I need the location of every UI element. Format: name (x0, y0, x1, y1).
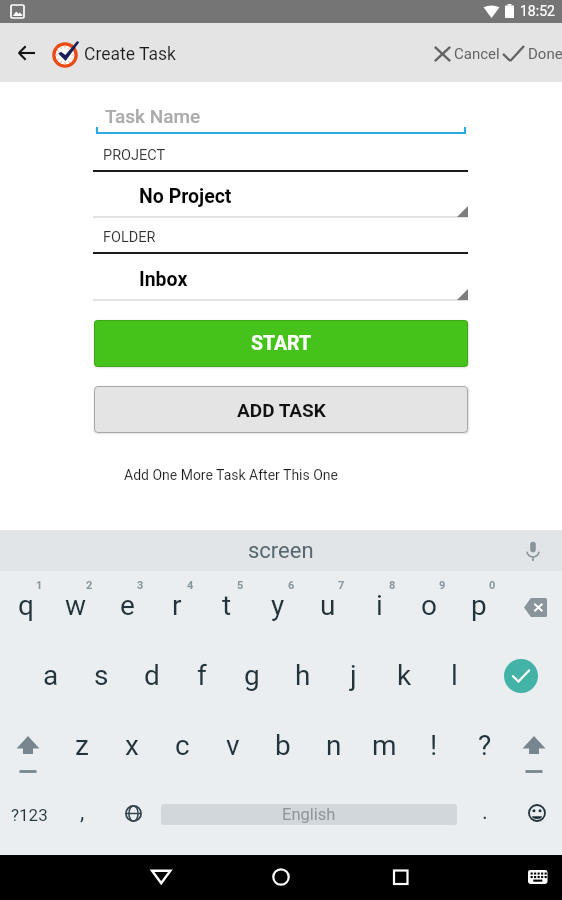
button[interactable]: ?123 (0, 788, 58, 838)
button[interactable]: k (379, 648, 429, 700)
button[interactable]: Switch keyboard (514, 855, 562, 900)
button[interactable]: Home (257, 855, 305, 900)
staticText: 8 (389, 579, 396, 592)
staticText: a (43, 659, 59, 692)
staticText: 4 (187, 579, 194, 592)
button[interactable]: Back (137, 855, 185, 900)
staticText: w (65, 589, 87, 622)
button[interactable]: Shift (3, 720, 53, 782)
button[interactable]: t (202, 578, 252, 630)
button[interactable]: j (328, 648, 378, 700)
button[interactable]: Emoji (512, 788, 562, 838)
staticText: 18:52 (520, 3, 555, 19)
staticText: l (451, 659, 458, 692)
button[interactable]: y (253, 578, 303, 630)
button[interactable]: Change language (108, 788, 158, 838)
staticText: Inbox (139, 268, 188, 291)
staticText: Cancel (454, 45, 500, 63)
staticText: screen (248, 538, 314, 564)
button[interactable]: Enter (496, 651, 546, 701)
button[interactable]: ! (409, 718, 459, 770)
button[interactable]: Backspace (510, 581, 560, 633)
button[interactable]: , (57, 788, 107, 838)
staticText: 7 (338, 579, 345, 592)
staticText: m (372, 729, 397, 762)
staticText: Task Name (105, 105, 201, 127)
staticText: d (144, 659, 160, 692)
staticText: k (397, 659, 412, 692)
button[interactable]: Voice input (518, 536, 548, 566)
button[interactable]: m (359, 718, 409, 770)
staticText: English (282, 805, 336, 824)
button[interactable] (94, 104, 468, 136)
button[interactable] (498, 31, 562, 75)
button[interactable]: r (152, 578, 202, 630)
staticText: y (271, 589, 285, 622)
staticText: START (251, 332, 312, 355)
button[interactable]: . (460, 788, 510, 838)
button[interactable]: d (127, 648, 177, 700)
button[interactable]: f (177, 648, 227, 700)
button[interactable]: c (157, 718, 207, 770)
button[interactable]: b (258, 718, 308, 770)
staticText: g (244, 659, 260, 692)
button[interactable]: Recent apps (377, 855, 425, 900)
staticText: p (471, 589, 487, 622)
staticText: 5 (237, 579, 244, 592)
staticText: 3 (137, 579, 144, 592)
staticText: 9 (439, 579, 446, 592)
button[interactable]: w (51, 578, 101, 630)
button[interactable]: i (354, 578, 404, 630)
button[interactable]: s (76, 648, 126, 700)
staticText: Done (528, 45, 562, 63)
staticText: b (275, 729, 291, 762)
button[interactable]: START (94, 320, 468, 367)
staticText: No Project (139, 185, 232, 208)
staticText: 6 (288, 579, 295, 592)
button[interactable]: g (227, 648, 277, 700)
staticText: j (350, 659, 357, 692)
button[interactable]: l (429, 648, 479, 700)
button[interactable]: ? (460, 718, 510, 770)
button[interactable]: u (303, 578, 353, 630)
button[interactable]: Back (2, 29, 50, 77)
staticText: Create Task (84, 44, 176, 65)
button[interactable] (430, 31, 500, 75)
staticText: h (295, 659, 311, 692)
button[interactable]: screen (201, 530, 361, 571)
staticText: i (376, 589, 383, 622)
button[interactable]: ADD TASK (94, 386, 468, 433)
button[interactable]: z (57, 718, 107, 770)
button[interactable]: Shift (509, 720, 559, 782)
staticText: FOLDER (103, 229, 156, 246)
staticText: v (226, 729, 240, 762)
button[interactable]: a (26, 648, 76, 700)
button[interactable]: h (278, 648, 328, 700)
staticText: 2 (86, 579, 93, 592)
button[interactable]: n (309, 718, 359, 770)
staticText: 1 (36, 579, 43, 592)
staticText: f (197, 659, 207, 692)
staticText: c (175, 729, 190, 762)
staticText: e (120, 589, 135, 622)
button[interactable]: q (1, 578, 51, 630)
staticText: x (125, 729, 139, 762)
button[interactable]: o (404, 578, 454, 630)
button[interactable]: e (102, 578, 152, 630)
button[interactable] (94, 174, 468, 218)
button[interactable]: p (454, 578, 504, 630)
button[interactable]: English (161, 804, 457, 825)
button[interactable]: v (208, 718, 258, 770)
staticText: ! (430, 729, 438, 762)
staticText: s (94, 659, 109, 692)
button[interactable] (94, 257, 468, 301)
staticText: ? (478, 729, 492, 762)
staticText: n (326, 729, 342, 762)
staticText: , (80, 799, 85, 825)
button[interactable]: Add One More Task After This One (110, 460, 352, 490)
staticText: r (172, 589, 182, 622)
staticText: 0 (489, 579, 496, 592)
staticText: o (421, 589, 437, 622)
staticText: z (75, 729, 89, 762)
button[interactable]: x (107, 718, 157, 770)
